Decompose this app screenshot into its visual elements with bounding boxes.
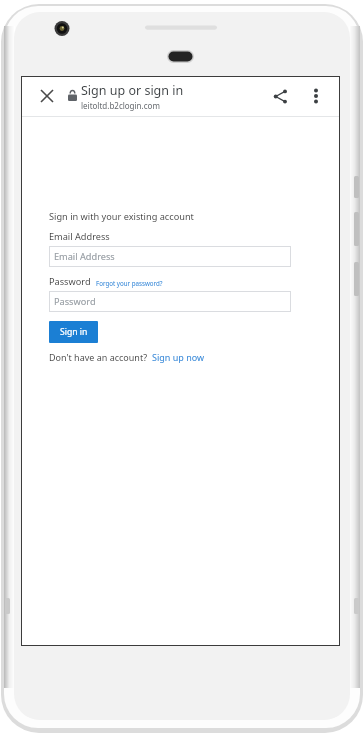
staticText: Sign up or sign in [81,82,184,99]
button[interactable]: Forgot your password? [96,279,163,287]
staticText: Password [54,295,96,308]
staticText: Password [49,275,91,288]
staticText: Sign up now [152,351,205,363]
staticText: Sign in with your existing account [49,210,194,223]
button[interactable]: Sign up now [152,351,205,363]
button[interactable]: More options [298,78,334,114]
staticText: Email Address [54,250,115,263]
staticText: Forgot your password? [96,279,163,287]
staticText: Email Address [49,230,110,243]
button[interactable]: Sign in [49,321,98,343]
button[interactable]: Share [262,78,298,114]
staticText: leitoltd.b2clogin.com [81,100,160,111]
button[interactable]: Password [49,291,291,312]
button[interactable]: Sign up or sign in [81,82,261,111]
button[interactable]: Email Address [49,246,291,267]
button[interactable]: Close [27,76,67,116]
staticText: Don't have an account? [49,351,148,363]
other: Secure connection [68,90,77,101]
staticText: Sign in [60,326,88,338]
